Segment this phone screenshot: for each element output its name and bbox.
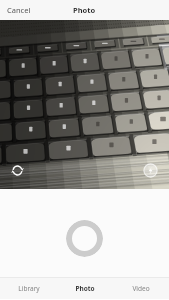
staticText: Cancel bbox=[7, 5, 31, 15]
button[interactable]: Take photo bbox=[66, 220, 103, 257]
button[interactable]: Library bbox=[0, 278, 57, 299]
button[interactable]: Flash bbox=[143, 163, 158, 178]
staticText: Library bbox=[18, 284, 40, 293]
staticText: Photo bbox=[73, 5, 96, 15]
button[interactable]: Cancel bbox=[0, 1, 38, 19]
staticText: Video bbox=[132, 284, 150, 293]
staticText: Photo bbox=[75, 284, 95, 293]
button[interactable]: Switch camera bbox=[9, 162, 26, 179]
button[interactable]: Video bbox=[113, 278, 169, 299]
button[interactable]: Photo bbox=[57, 278, 113, 299]
